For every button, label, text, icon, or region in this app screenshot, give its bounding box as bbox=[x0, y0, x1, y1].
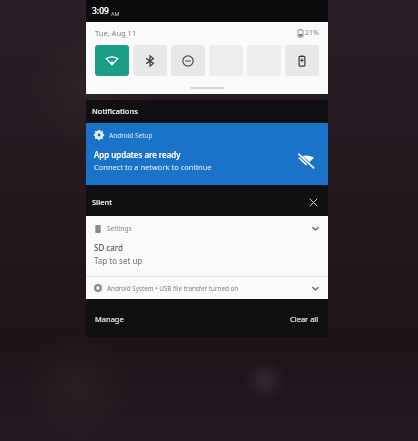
button[interactable]: Battery Saver bbox=[285, 45, 319, 76]
button[interactable]: Wi-Fi bbox=[95, 45, 129, 76]
staticText: 21% bbox=[305, 28, 319, 38]
staticText: Notifications bbox=[92, 106, 138, 116]
staticText: 3:09 bbox=[92, 5, 109, 17]
staticText: Tap to set up bbox=[94, 255, 143, 266]
staticText: Settings bbox=[107, 224, 132, 233]
button[interactable]: Dismiss silent notifications bbox=[306, 195, 320, 209]
button[interactable]: Manage bbox=[92, 311, 127, 327]
staticText: Clear all bbox=[290, 314, 319, 324]
button[interactable]: Settings bbox=[86, 216, 328, 276]
staticText: Android Setup bbox=[109, 131, 153, 140]
staticText: SD card bbox=[94, 242, 124, 253]
staticText: Silent bbox=[92, 197, 113, 207]
button[interactable]: Clear all bbox=[287, 311, 322, 327]
staticText: Connect to a network to continue bbox=[94, 162, 212, 172]
staticText: Android System • USB file transfer turne… bbox=[107, 284, 239, 293]
button[interactable]: Android System • USB file transfer turne… bbox=[86, 277, 328, 299]
staticText: App updates are ready bbox=[94, 149, 181, 160]
button[interactable]: Bluetooth bbox=[133, 45, 167, 76]
staticText: Manage bbox=[95, 314, 124, 324]
button[interactable]: Do Not Disturb bbox=[171, 45, 205, 76]
staticText: AM bbox=[111, 10, 120, 17]
staticText: Tue, Aug 11 bbox=[95, 28, 137, 38]
button[interactable]: Android Setup bbox=[86, 123, 328, 185]
